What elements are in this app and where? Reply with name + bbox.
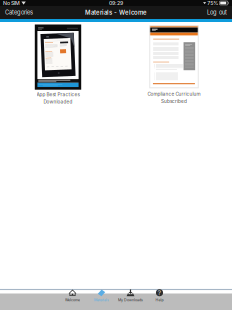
button[interactable]: Categories: [1, 7, 37, 18]
staticText: Materials - Welcome: [85, 9, 147, 16]
button[interactable]: Materials: [87, 290, 116, 307]
button[interactable]: Welcome: [58, 290, 87, 307]
staticText: Compliance Curriculum: [147, 91, 200, 97]
staticText: My Downloads: [118, 298, 143, 302]
staticText: App Best Practices: [36, 92, 79, 97]
button[interactable]: My Downloads: [116, 290, 145, 307]
staticText: No SIM: [3, 0, 20, 6]
staticText: Log out: [207, 9, 227, 16]
staticText: 75%: [207, 0, 218, 6]
staticText: Materials: [94, 298, 109, 302]
button[interactable]: Compliance Curriculum: [129, 26, 219, 104]
staticText: Categories: [5, 9, 33, 16]
button[interactable]: Log out: [203, 7, 231, 18]
button[interactable]: ?: [145, 290, 174, 307]
staticText: Downloaded: [43, 99, 72, 105]
staticText: 09:29: [109, 0, 123, 6]
staticText: ?: [157, 289, 161, 297]
staticText: Welcome: [65, 298, 80, 302]
staticText: Subscribed: [161, 98, 187, 104]
staticText: Help: [155, 298, 163, 302]
button[interactable]: App Best Practices: [13, 26, 103, 104]
